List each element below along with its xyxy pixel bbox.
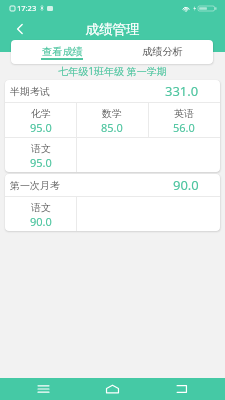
staticText: 英语 [174, 107, 194, 120]
button[interactable]: 成绩分析 [112, 40, 213, 64]
staticText: 331.0 [165, 82, 199, 100]
staticText: 95.0 [30, 120, 52, 135]
button[interactable]: Back [170, 378, 193, 400]
staticText: 成绩分析 [142, 45, 183, 58]
button[interactable]: 第一次月考 [5, 174, 220, 231]
staticText: 语文 [31, 201, 51, 214]
staticText: 查看成绩 [42, 45, 83, 58]
button[interactable]: Recent apps [32, 378, 55, 400]
staticText: 七年级1班年级 第一学期 [0, 64, 225, 78]
button[interactable]: 半期考试 [5, 80, 220, 172]
staticText: 56.0 [173, 120, 195, 135]
button[interactable]: Home [101, 378, 124, 400]
staticText: 第一次月考 [10, 179, 60, 192]
button[interactable]: Back [8, 17, 32, 40]
staticText: 化学 [31, 107, 51, 120]
button[interactable]: 查看成绩 [11, 40, 112, 64]
staticText: 17:23 [17, 3, 37, 13]
staticText: 数学 [102, 107, 122, 120]
staticText: 90.0 [30, 214, 52, 229]
staticText: 半期考试 [10, 85, 50, 98]
staticText: 90.0 [173, 176, 199, 194]
staticText: 成绩管理 [0, 21, 225, 38]
staticText: 85.0 [101, 120, 123, 135]
staticText: 语文 [31, 142, 51, 155]
staticText: 95.0 [30, 155, 52, 170]
